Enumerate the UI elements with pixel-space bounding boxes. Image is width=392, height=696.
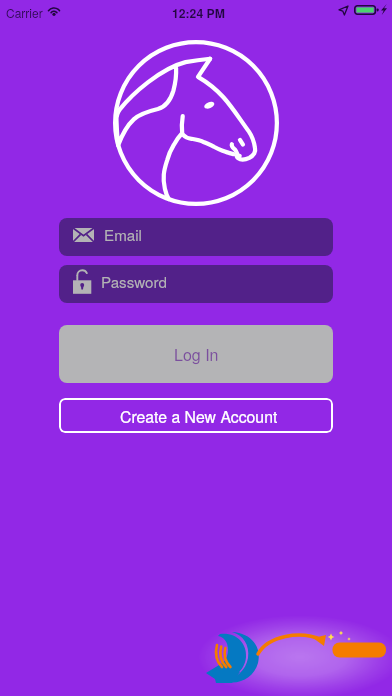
staticText: Log In bbox=[174, 343, 219, 366]
button[interactable]: Email bbox=[59, 218, 333, 256]
staticText: Create a New Account bbox=[120, 405, 278, 428]
staticText: 12:24 PM bbox=[172, 4, 225, 21]
other: Password bbox=[73, 268, 92, 291]
other: Email bbox=[73, 228, 94, 242]
staticText: Email bbox=[104, 224, 142, 246]
button[interactable]: Create a New Account bbox=[59, 398, 333, 433]
staticText: Carrier bbox=[6, 4, 43, 21]
button[interactable]: Password bbox=[59, 265, 333, 303]
staticText: Password bbox=[101, 271, 168, 293]
button[interactable]: Log In bbox=[59, 325, 333, 383]
